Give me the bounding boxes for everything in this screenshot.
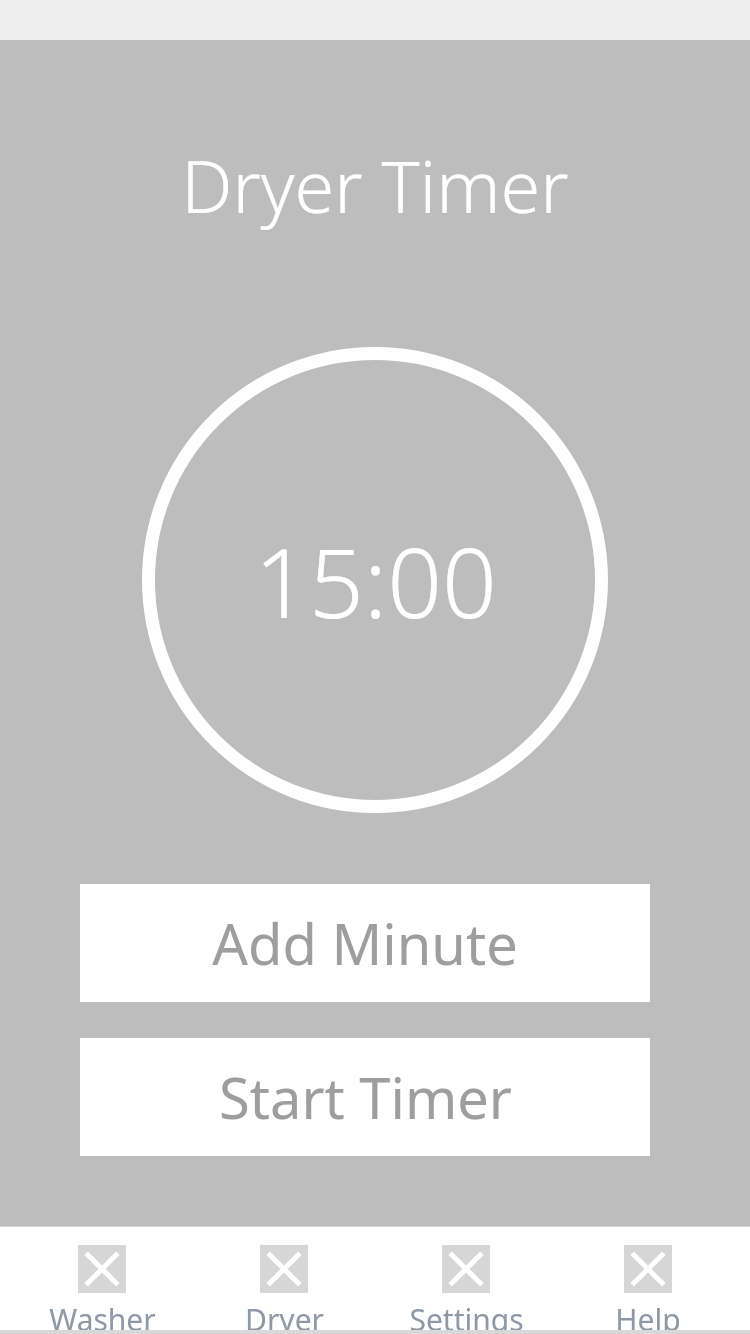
other: Dryer: [260, 1245, 308, 1293]
other: Settings: [442, 1245, 490, 1293]
staticText: Help: [615, 1299, 681, 1334]
button[interactable]: Add Minute: [80, 884, 650, 1002]
staticText: Washer: [49, 1299, 156, 1334]
button[interactable]: Washer: [22, 1226, 182, 1334]
staticText: Dryer: [245, 1299, 324, 1334]
button[interactable]: Start Timer: [80, 1038, 650, 1156]
staticText: Start Timer: [219, 1059, 512, 1135]
other: Washer: [78, 1245, 126, 1293]
button[interactable]: Help: [568, 1226, 728, 1334]
staticText: Dryer Timer: [181, 136, 569, 234]
other: Help: [624, 1245, 672, 1293]
button[interactable]: Dryer: [204, 1226, 364, 1334]
staticText: Add Minute: [212, 905, 518, 981]
staticText: 15:00: [254, 515, 497, 646]
staticText: Settings: [409, 1299, 524, 1334]
button[interactable]: Settings: [386, 1226, 546, 1334]
